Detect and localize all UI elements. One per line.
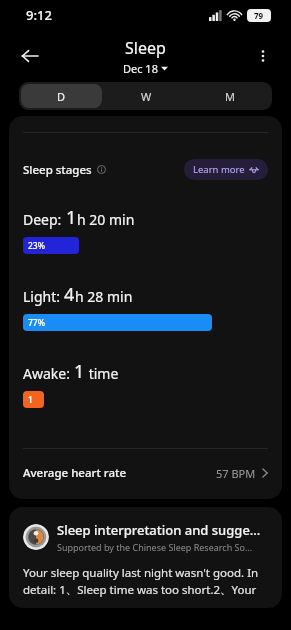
button[interactable]: W: [106, 84, 186, 108]
staticText: Sleep: [125, 37, 166, 59]
button[interactable]: D: [21, 84, 102, 108]
staticText: M: [225, 89, 235, 104]
staticText: 57 BPM: [216, 466, 256, 481]
staticText: 1: [66, 205, 77, 230]
button[interactable]: Average heart rate: [9, 449, 282, 497]
staticText: Supported by the Chinese Sleep Research …: [57, 541, 253, 553]
staticText: Average heart rate: [23, 465, 126, 481]
staticText: Dec 18: [123, 61, 158, 76]
staticText: Sleep interpretation and sugge…: [57, 521, 261, 539]
staticText: 79: [254, 10, 264, 21]
staticText: 1 t...: [28, 394, 44, 406]
staticText: Learn more: [193, 163, 245, 176]
button[interactable]: M: [190, 84, 270, 108]
staticText: h 20 min: [77, 210, 135, 229]
staticText: 23%: [28, 240, 45, 252]
button[interactable]: Back: [12, 38, 48, 74]
staticText: 1: [74, 359, 85, 384]
button[interactable]: Learn more: [184, 159, 268, 180]
staticText: Deep:: [23, 210, 66, 229]
staticText: W: [141, 89, 152, 104]
staticText: 4: [64, 282, 75, 307]
staticText: D: [57, 89, 66, 104]
staticText: Sleep stages: [23, 162, 92, 178]
staticText: Awake:: [23, 364, 74, 383]
staticText: time: [85, 364, 119, 383]
staticText: h 28 min: [75, 287, 133, 306]
button[interactable]: Dec 18: [123, 61, 168, 76]
button[interactable]: More options: [247, 40, 279, 72]
staticText: Light:: [23, 287, 64, 306]
staticText: 9:12: [26, 6, 52, 24]
staticText: 77%: [28, 317, 45, 329]
button[interactable]: Sleep interpretation and sugge…: [9, 507, 282, 608]
staticText: Your sleep quality last night wasn't goo…: [23, 565, 268, 598]
